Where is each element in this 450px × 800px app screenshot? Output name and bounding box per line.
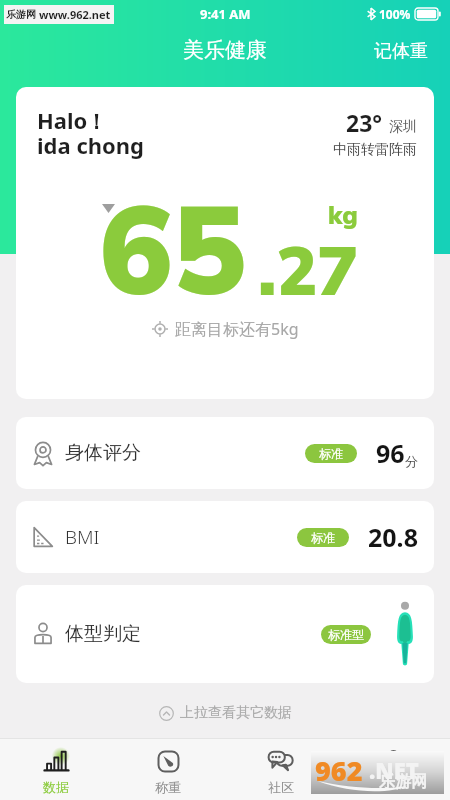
- staticText: 我的: [381, 779, 407, 795]
- staticText: 962: [315, 752, 363, 789]
- button[interactable]: 记体重: [356, 30, 450, 73]
- staticText: 数据: [43, 779, 69, 795]
- staticText: 9:41 AM: [200, 5, 251, 23]
- button[interactable]: BMI: [16, 501, 434, 573]
- staticText: kg: [328, 200, 358, 230]
- staticText: 深圳: [389, 118, 417, 136]
- staticText: 标准型: [328, 627, 364, 642]
- staticText: www.962.net: [39, 7, 111, 22]
- button[interactable]: 数据: [0, 739, 112, 800]
- staticText: BMI: [65, 524, 100, 550]
- staticText: ！: [86, 109, 107, 135]
- staticText: 标准: [311, 530, 335, 545]
- button[interactable]: 称重: [112, 739, 224, 800]
- staticText: 记体重: [374, 40, 428, 63]
- staticText: 标准: [319, 446, 343, 461]
- staticText: 美乐健康: [183, 37, 267, 63]
- staticText: 上拉查看其它数据: [180, 704, 292, 722]
- staticText: .27: [258, 227, 359, 312]
- staticText: ida chong: [37, 130, 144, 160]
- button[interactable]: 身体评分: [16, 417, 434, 489]
- staticText: .NET: [369, 755, 419, 785]
- staticText: Halo: [37, 105, 88, 135]
- button[interactable]: 社区: [224, 739, 337, 800]
- button[interactable]: 我的: [337, 739, 450, 800]
- staticText: 体型判定: [65, 622, 141, 646]
- staticText: 23°: [346, 107, 383, 138]
- staticText: 称重: [155, 779, 181, 795]
- staticText: 20.8: [368, 520, 418, 554]
- staticText: 65: [99, 170, 247, 324]
- staticText: 乐游网: [379, 772, 427, 792]
- staticText: 中雨转雷阵雨: [333, 141, 417, 159]
- staticText: 96: [376, 436, 405, 470]
- staticText: 距离目标还有5kg: [175, 318, 299, 340]
- button[interactable]: Halo: [16, 87, 434, 399]
- staticText: 乐游网: [6, 8, 36, 21]
- staticText: 身体评分: [65, 441, 141, 465]
- button[interactable]: 体型判定: [16, 585, 434, 683]
- staticText: 社区: [268, 779, 294, 795]
- staticText: 分: [405, 453, 418, 469]
- button[interactable]: 上拉查看其它数据: [0, 690, 450, 730]
- staticText: 100%: [379, 6, 411, 22]
